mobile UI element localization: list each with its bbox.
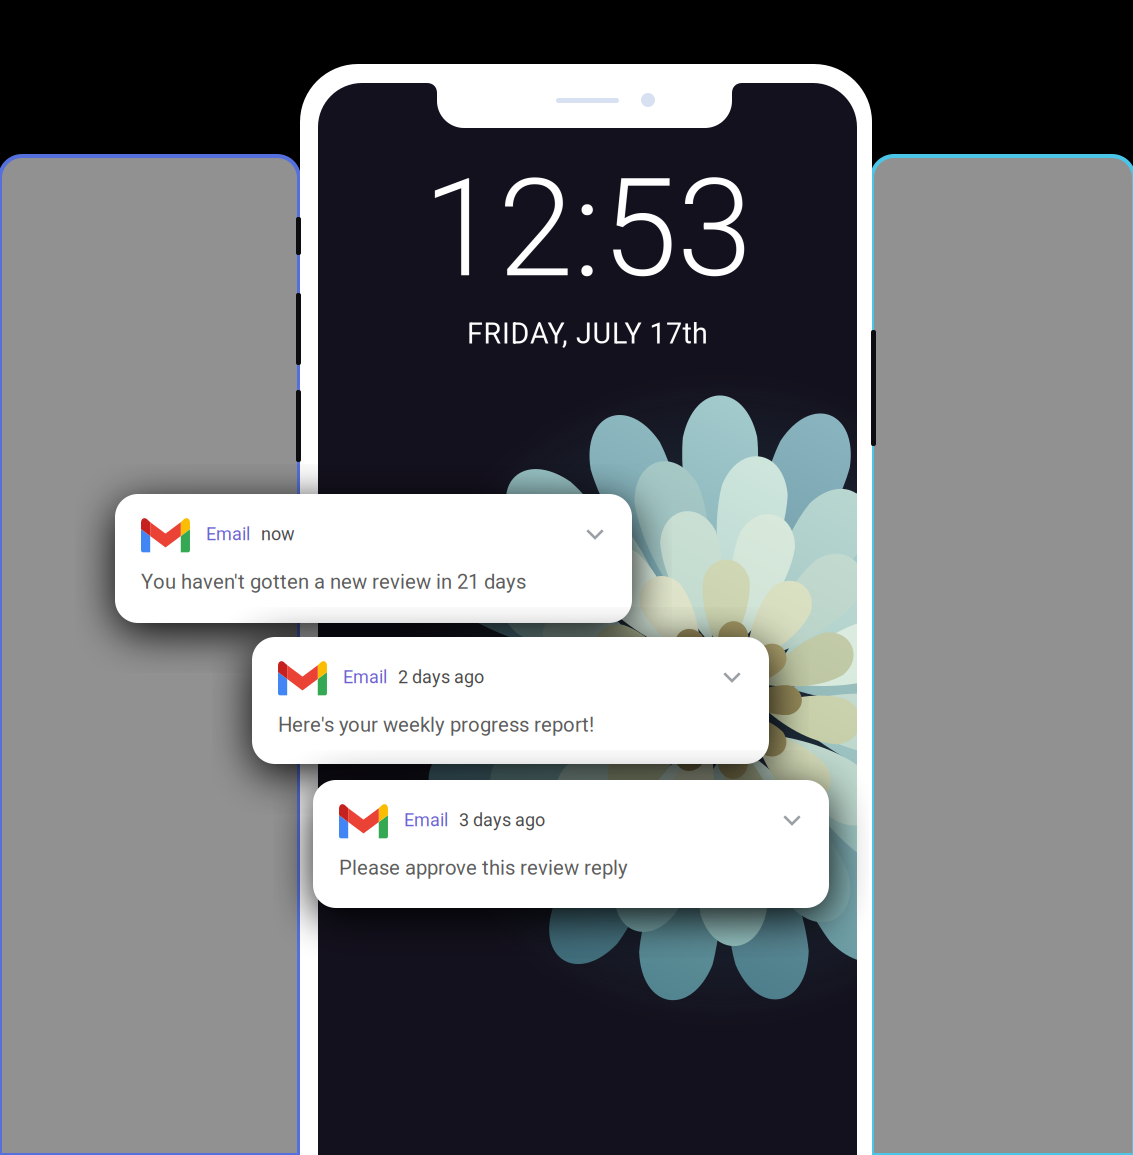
staticText: Email [343,666,387,688]
staticText: now [261,523,295,545]
button[interactable]: Email [115,494,632,623]
button[interactable]: Email [313,780,829,908]
staticText: Here's your weekly progress report! [278,713,594,737]
staticText: 2 days ago [398,666,484,688]
staticText: 3 days ago [459,809,545,831]
staticText: Please approve this review reply [339,856,628,880]
staticText: Email [206,523,250,545]
staticText: FRIDAY, JULY 17th [467,317,708,351]
staticText: Email [404,809,448,831]
button[interactable]: Email [252,637,769,764]
staticText: 12:53 [423,149,752,308]
staticText: You haven't gotten a new review in 21 da… [141,570,526,594]
